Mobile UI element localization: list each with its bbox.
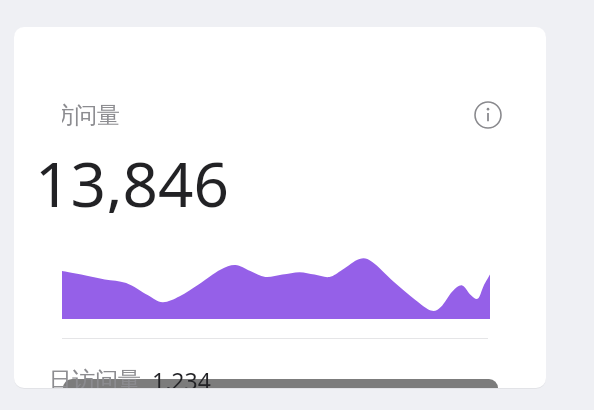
- button[interactable]: More information: [471, 98, 505, 132]
- staticText: 日访问量: [49, 366, 141, 388]
- staticText: 13,846: [35, 141, 229, 213]
- staticText: 1,234: [152, 365, 211, 388]
- staticText: 访问量: [62, 101, 120, 130]
